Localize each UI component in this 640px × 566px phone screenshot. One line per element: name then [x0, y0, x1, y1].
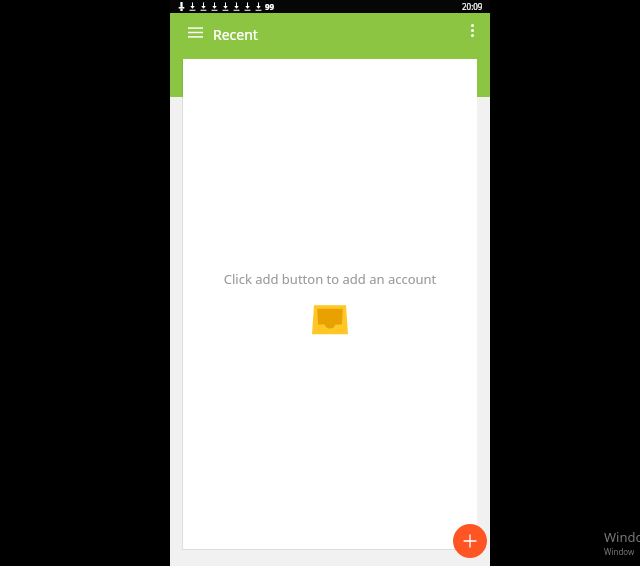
staticText: Click add button to add an account	[183, 270, 477, 288]
staticText: Window	[604, 546, 635, 557]
staticText: 20:09	[462, 1, 483, 12]
button[interactable]: Open navigation drawer	[179, 16, 211, 48]
staticText: 99	[265, 1, 275, 12]
staticText: Windo	[604, 528, 640, 546]
button[interactable]: Add account	[453, 524, 487, 558]
staticText: Recent	[213, 25, 258, 44]
button[interactable]: More options	[458, 16, 486, 44]
